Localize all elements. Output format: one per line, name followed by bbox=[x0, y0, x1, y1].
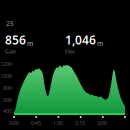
staticText: 2:15 bbox=[75, 119, 85, 127]
staticText: Gain bbox=[5, 48, 16, 55]
staticText: 0:00 bbox=[9, 119, 19, 127]
staticText: 400 bbox=[3, 107, 12, 115]
staticText: 800 bbox=[3, 84, 12, 92]
staticText: 1:30 bbox=[53, 119, 63, 127]
staticText: 1200 bbox=[0, 60, 12, 68]
staticText: 25 bbox=[6, 19, 14, 28]
staticText: m bbox=[27, 39, 33, 48]
staticText: 3:00 bbox=[97, 119, 107, 127]
staticText: 856 bbox=[5, 32, 26, 48]
staticText: m bbox=[97, 39, 103, 48]
staticText: Elev bbox=[65, 48, 75, 55]
staticText: 1000 bbox=[0, 72, 12, 80]
staticText: 600 bbox=[3, 96, 12, 104]
staticText: 0:45 bbox=[31, 119, 41, 127]
staticText: 1,046 bbox=[65, 32, 96, 48]
